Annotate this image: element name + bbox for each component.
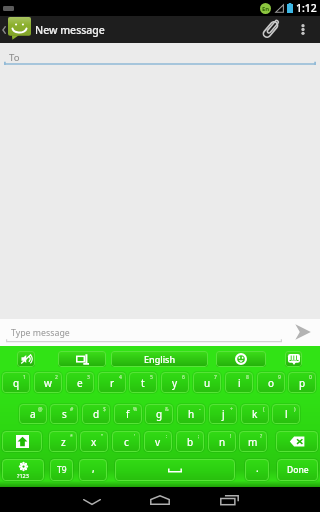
staticText: ;	[198, 433, 200, 440]
button[interactable]: a	[18, 403, 48, 425]
staticText: f	[126, 407, 130, 421]
staticText: 5	[150, 374, 153, 381]
button[interactable]: e	[65, 371, 95, 394]
button[interactable]: y	[160, 371, 190, 394]
button[interactable]: Period	[244, 458, 270, 482]
staticText: v	[155, 435, 161, 449]
button[interactable]: English	[111, 351, 208, 367]
button[interactable]: Space	[114, 458, 236, 482]
button[interactable]: k	[240, 403, 270, 425]
button[interactable]: h	[176, 403, 206, 425]
staticText: :	[166, 433, 168, 440]
staticText: @	[38, 406, 43, 413]
staticText: u	[204, 376, 211, 390]
staticText: %	[133, 406, 138, 413]
button[interactable]: Done	[276, 458, 319, 482]
button[interactable]: w	[33, 371, 63, 394]
staticText: n	[219, 435, 226, 449]
button[interactable]: i	[224, 371, 254, 394]
staticText: c	[124, 435, 129, 449]
button[interactable]: Mute sound	[17, 351, 35, 367]
staticText: h	[188, 407, 195, 421]
staticText: o	[268, 376, 275, 390]
staticText: z	[61, 435, 66, 449]
staticText: T9	[57, 464, 67, 476]
staticText: &	[165, 406, 169, 413]
staticText: (	[263, 406, 265, 413]
staticText: r	[110, 376, 115, 390]
button[interactable]: u	[192, 371, 222, 394]
staticText: t	[141, 376, 145, 390]
staticText: 7	[214, 374, 217, 381]
staticText: ,	[92, 461, 95, 475]
button[interactable]: g	[144, 403, 174, 425]
button[interactable]: v	[143, 430, 173, 453]
staticText: To	[9, 51, 20, 64]
button[interactable]: Symbols	[1, 458, 45, 482]
button[interactable]: Attach	[253, 16, 288, 43]
button[interactable]: s	[49, 403, 79, 425]
button[interactable]: Keyboard layout	[285, 351, 302, 367]
button[interactable]: Navigate up	[0, 16, 110, 43]
button[interactable]: x	[79, 430, 109, 453]
staticText: 8	[246, 374, 249, 381]
staticText: 2	[55, 374, 58, 381]
staticText: .	[256, 461, 259, 475]
button[interactable]: Send	[288, 321, 317, 343]
button[interactable]: f	[113, 403, 143, 425]
button[interactable]: p	[287, 371, 317, 394]
staticText: b	[187, 435, 194, 449]
staticText: w	[44, 376, 52, 390]
staticText: x	[91, 435, 97, 449]
button[interactable]: l	[271, 403, 301, 425]
button[interactable]: Comma	[78, 458, 108, 482]
button[interactable]: d	[81, 403, 111, 425]
staticText: e	[77, 376, 83, 390]
staticText: '	[134, 433, 136, 440]
staticText: 1:12	[296, 1, 317, 15]
staticText: En	[262, 5, 270, 13]
staticText: Done	[287, 464, 309, 476]
staticText: New message	[35, 23, 105, 37]
button[interactable]: Shift	[1, 430, 43, 453]
button[interactable]: c	[111, 430, 141, 453]
button[interactable]: Type message	[6, 319, 282, 342]
staticText: -	[199, 406, 201, 413]
staticText: English	[144, 353, 176, 365]
staticText: k	[252, 407, 258, 421]
button[interactable]: m	[238, 430, 268, 453]
button[interactable]: Recents	[199, 487, 259, 512]
staticText: p	[299, 376, 306, 390]
staticText: )	[294, 406, 296, 413]
staticText: ?	[260, 433, 263, 440]
button[interactable]: o	[256, 371, 286, 394]
button[interactable]: Back	[62, 487, 122, 512]
staticText: 9	[278, 374, 281, 381]
staticText: 3	[87, 374, 90, 381]
button[interactable]: j	[208, 403, 238, 425]
staticText: s	[62, 407, 67, 421]
staticText: "	[101, 433, 104, 440]
button[interactable]: z	[48, 430, 78, 453]
button[interactable]: r	[97, 371, 127, 394]
button[interactable]: T9	[49, 458, 74, 482]
button[interactable]: t	[128, 371, 158, 394]
staticText: d	[93, 407, 100, 421]
staticText: Type message	[11, 327, 70, 339]
staticText: +	[230, 406, 233, 413]
staticText: a	[30, 407, 36, 421]
button[interactable]: b	[175, 430, 205, 453]
button[interactable]: Voice input	[58, 351, 106, 367]
button[interactable]: More options	[289, 16, 317, 43]
staticText: l	[285, 407, 288, 421]
button[interactable]: Home	[130, 487, 190, 512]
staticText: #	[70, 406, 74, 413]
button[interactable]: q	[1, 371, 31, 394]
staticText: q	[13, 376, 20, 390]
button[interactable]: Emoji	[216, 351, 266, 367]
button[interactable]: n	[207, 430, 237, 453]
staticText: y	[172, 376, 178, 390]
staticText: $	[103, 406, 106, 413]
staticText: *	[70, 433, 73, 440]
button[interactable]: Delete	[275, 430, 319, 453]
